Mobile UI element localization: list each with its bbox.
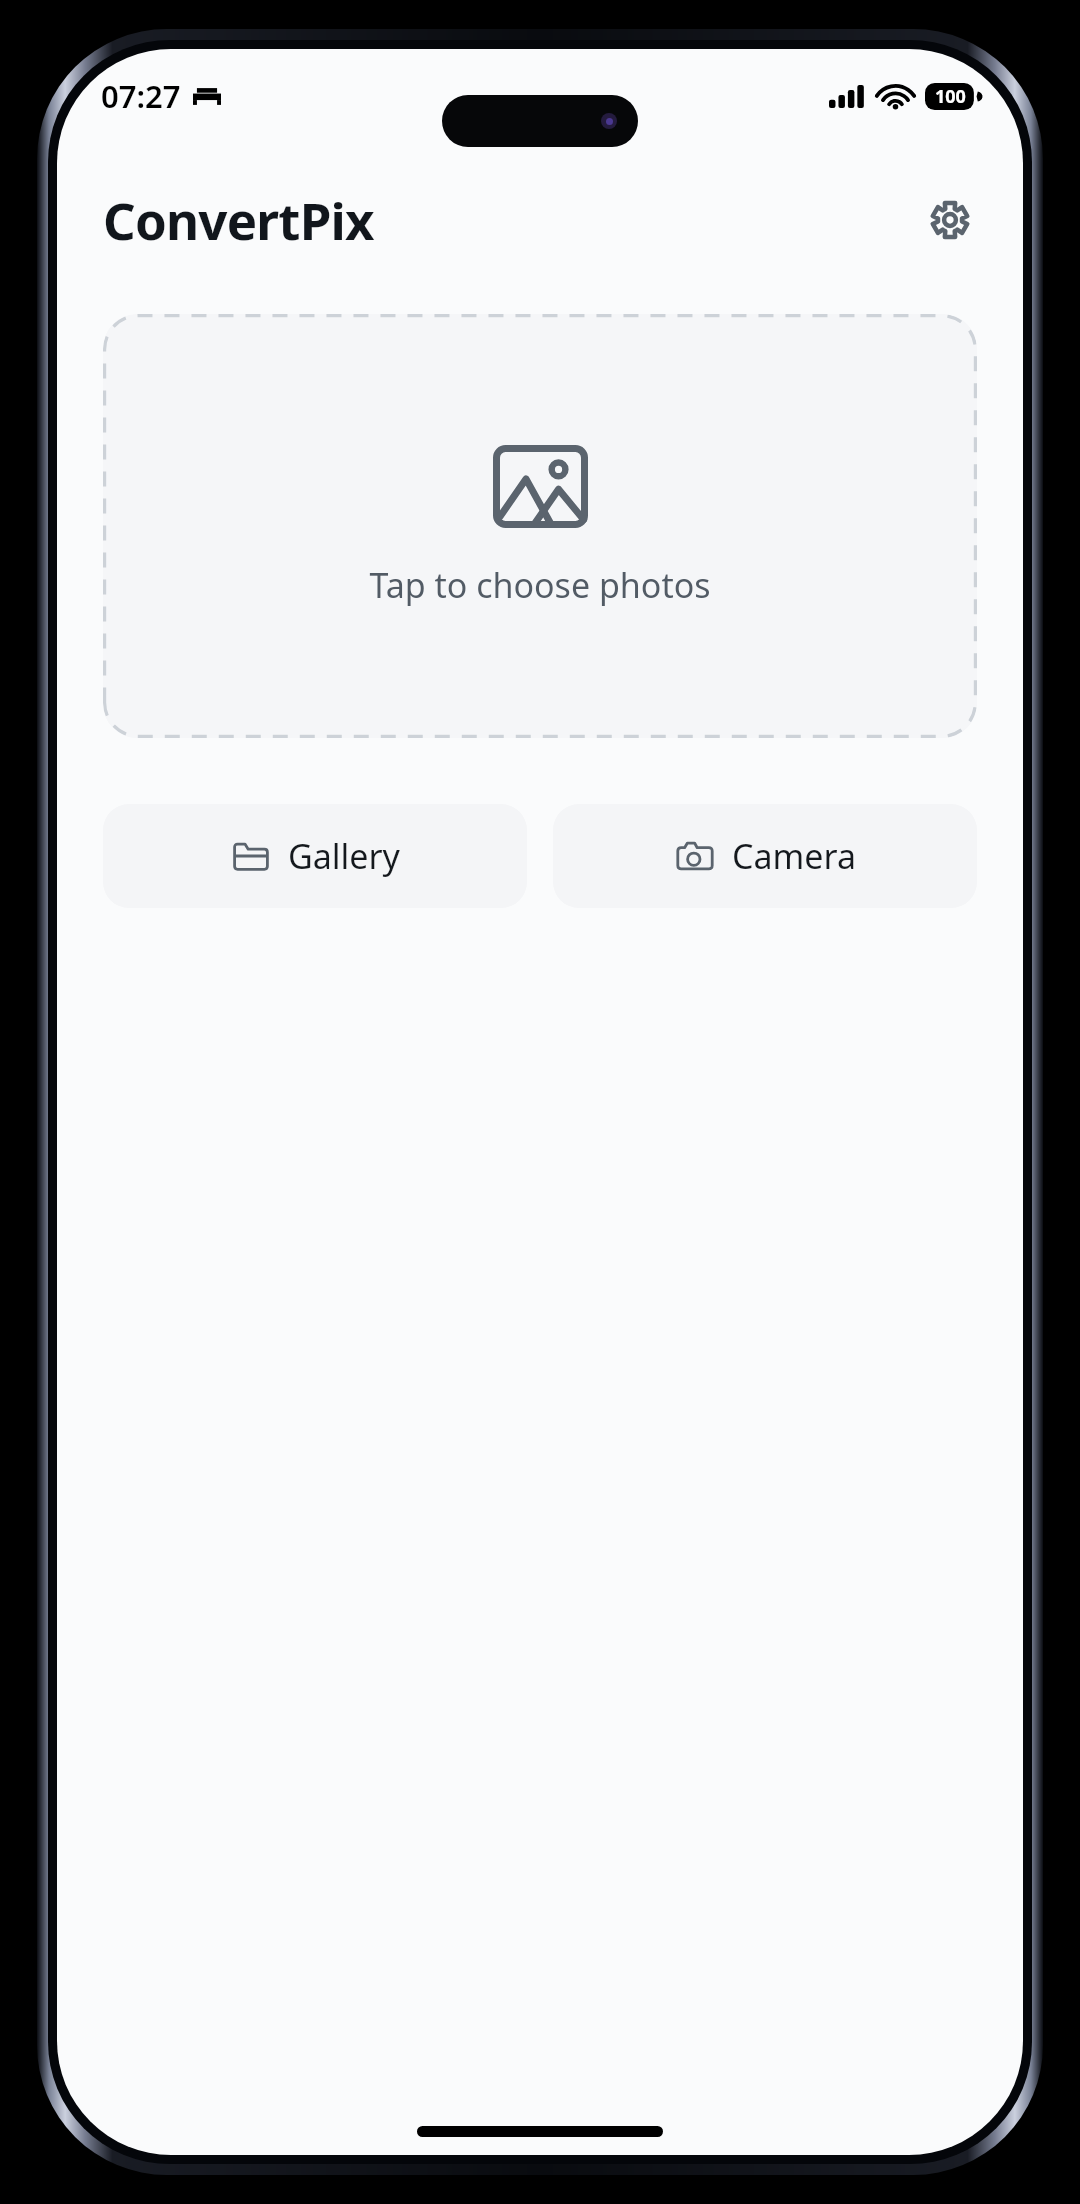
- staticText: Tap to choose photos: [369, 562, 711, 608]
- staticText: Gallery: [288, 833, 400, 879]
- staticText: 100: [935, 84, 966, 109]
- staticText: Camera: [732, 833, 856, 879]
- staticText: ConvertPix: [103, 185, 374, 254]
- button[interactable]: Tap to choose photos: [103, 314, 977, 738]
- staticText: 07:27: [101, 75, 181, 117]
- button[interactable]: Settings: [917, 187, 983, 253]
- button[interactable]: Camera: [553, 804, 977, 908]
- button[interactable]: Gallery: [103, 804, 527, 908]
